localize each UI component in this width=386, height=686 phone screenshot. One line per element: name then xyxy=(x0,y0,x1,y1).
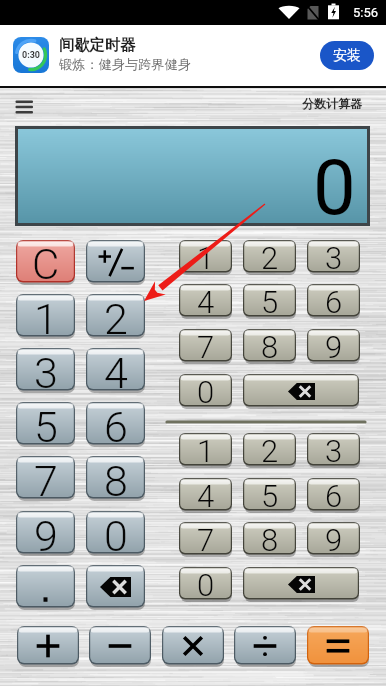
staticText: C xyxy=(32,240,60,284)
button[interactable]: 4 xyxy=(179,284,232,318)
staticText: 8 xyxy=(104,456,128,500)
button[interactable]: 3 xyxy=(307,433,360,467)
button[interactable]: C xyxy=(16,240,75,284)
staticText: 9 xyxy=(325,522,343,556)
button[interactable]: 9 xyxy=(307,329,360,363)
staticText: 1 xyxy=(34,294,58,338)
staticText: 2 xyxy=(104,294,128,338)
button[interactable]: 0 xyxy=(179,374,232,408)
button[interactable]: Divide xyxy=(234,626,296,666)
staticText: 2 xyxy=(261,433,279,467)
staticText: 0 xyxy=(104,511,128,555)
staticText: 0:30 xyxy=(22,50,41,61)
button[interactable]: 1 xyxy=(179,240,232,274)
staticText: 3 xyxy=(325,240,343,274)
button[interactable]: 8 xyxy=(86,456,145,500)
button[interactable]: Plus minus xyxy=(86,240,145,284)
staticText: 6 xyxy=(325,478,343,512)
button[interactable]: Backspace xyxy=(243,567,359,601)
staticText: 7 xyxy=(34,456,58,500)
staticText: 3 xyxy=(325,433,343,467)
button[interactable]: 1 xyxy=(16,294,75,338)
staticText: 间歇定时器 xyxy=(59,35,136,54)
staticText: 5 xyxy=(261,284,279,318)
button[interactable]: 6 xyxy=(86,402,145,446)
staticText: 8 xyxy=(261,329,279,363)
button[interactable]: 8 xyxy=(243,522,296,556)
button[interactable]: 2 xyxy=(86,294,145,338)
button[interactable]: 4 xyxy=(86,348,145,392)
button[interactable]: Backspace xyxy=(86,565,145,609)
staticText: 9 xyxy=(34,511,58,555)
button[interactable]: 3 xyxy=(307,240,360,274)
button[interactable]: 5 xyxy=(243,478,296,512)
button[interactable]: 6 xyxy=(307,284,360,318)
staticText: 2 xyxy=(261,240,279,274)
button[interactable]: 5 xyxy=(243,284,296,318)
button[interactable]: 0 xyxy=(86,511,145,555)
staticText: 分数计算器 xyxy=(302,96,362,111)
button[interactable]: 7 xyxy=(16,456,75,500)
staticText: 6 xyxy=(325,284,343,318)
button[interactable]: Equals xyxy=(307,626,369,666)
staticText: 5 xyxy=(261,478,279,512)
button[interactable]: 6 xyxy=(307,478,360,512)
button[interactable]: Multiply xyxy=(162,626,224,666)
button[interactable]: 1 xyxy=(179,433,232,467)
staticText: 0 xyxy=(197,567,215,601)
button[interactable]: 5 xyxy=(16,402,75,446)
staticText: 3 xyxy=(34,348,58,392)
button[interactable]: 0 xyxy=(179,567,232,601)
button[interactable]: 4 xyxy=(179,478,232,512)
button[interactable]: Menu xyxy=(6,93,44,123)
staticText: 6 xyxy=(104,402,128,446)
button[interactable]: 8 xyxy=(243,329,296,363)
staticText: 1 xyxy=(197,433,215,467)
staticText: 4 xyxy=(197,284,215,318)
staticText: 8 xyxy=(261,522,279,556)
staticText: 锻炼：健身与跨界健身 xyxy=(59,56,191,73)
staticText: 4 xyxy=(104,348,128,392)
staticText: 4 xyxy=(197,478,215,512)
button[interactable]: 2 xyxy=(243,433,296,467)
button[interactable]: 7 xyxy=(179,329,232,363)
staticText: 5 xyxy=(34,402,58,446)
button[interactable]: 安装 xyxy=(320,41,374,70)
button[interactable]: Backspace xyxy=(243,374,359,408)
staticText: 7 xyxy=(197,522,215,556)
staticText: 安装 xyxy=(333,47,361,65)
staticText: 9 xyxy=(325,329,343,363)
staticText: 5:56 xyxy=(353,5,379,20)
button[interactable]: 7 xyxy=(179,522,232,556)
button[interactable]: 0:30 xyxy=(0,25,386,86)
staticText: 1 xyxy=(197,240,215,274)
button[interactable]: 9 xyxy=(307,522,360,556)
button[interactable]: 2 xyxy=(243,240,296,274)
button[interactable]: Plus xyxy=(17,626,79,666)
button[interactable]: 3 xyxy=(16,348,75,392)
staticText: 7 xyxy=(197,329,215,363)
staticText: 0 xyxy=(313,143,356,223)
button[interactable] xyxy=(16,565,75,609)
button[interactable]: 9 xyxy=(16,511,75,555)
staticText: 0 xyxy=(197,374,215,408)
button[interactable]: Minus xyxy=(89,626,151,666)
